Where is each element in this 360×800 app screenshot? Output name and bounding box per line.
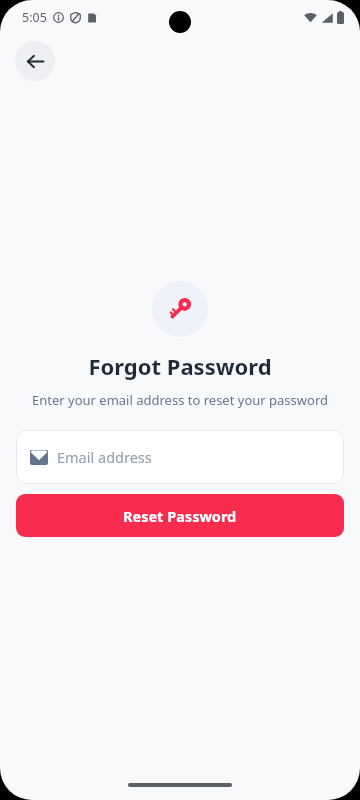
staticText: Enter your email address to reset your p… <box>32 391 328 409</box>
staticText: Reset Password <box>123 506 237 526</box>
button[interactable]: Reset Password <box>16 494 344 537</box>
staticText: Forgot Password <box>88 351 272 381</box>
staticText: 5:05 <box>22 9 47 26</box>
button[interactable]: Email address <box>16 430 344 484</box>
button[interactable]: Back <box>15 41 55 81</box>
staticText: Email address <box>57 447 152 467</box>
